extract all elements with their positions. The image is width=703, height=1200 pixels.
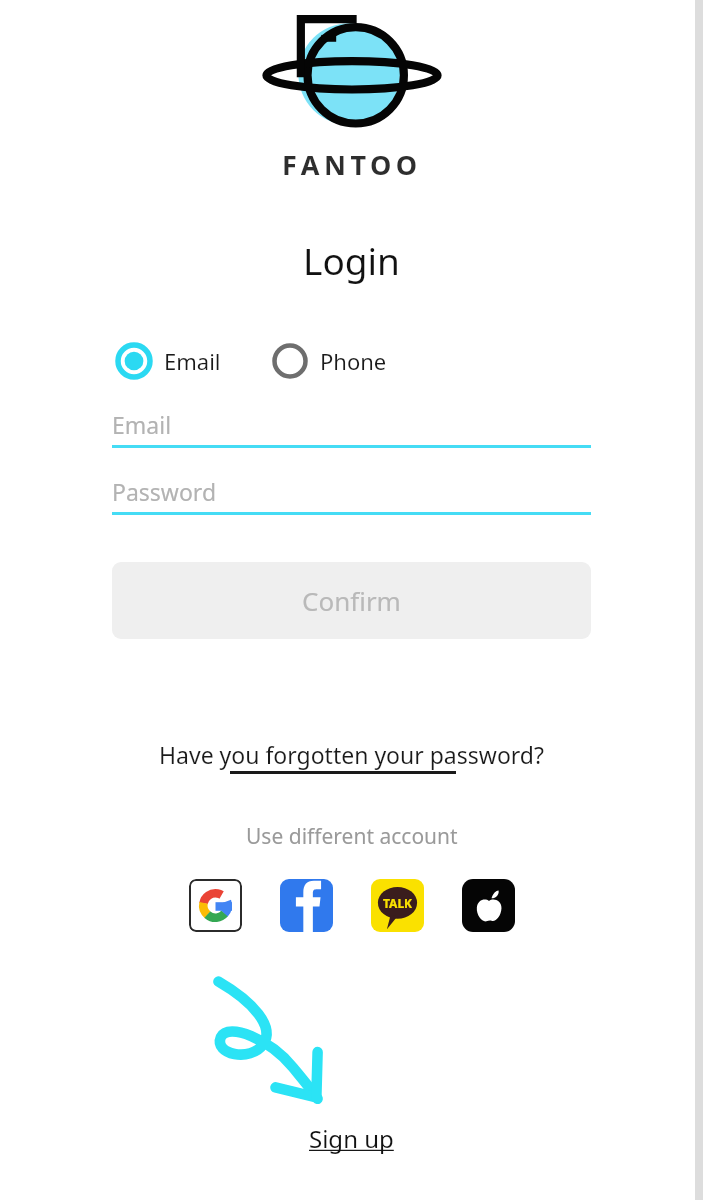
button[interactable]: Phone bbox=[272, 343, 387, 379]
button[interactable]: Sign in with Kakao Talk bbox=[371, 879, 424, 932]
button[interactable]: Confirm bbox=[112, 562, 591, 639]
staticText: Use different account bbox=[246, 822, 458, 851]
staticText: Password bbox=[112, 476, 217, 507]
staticText: Login bbox=[303, 235, 400, 285]
staticText: Sign up bbox=[309, 1122, 394, 1155]
staticText: TALK bbox=[383, 895, 413, 911]
button[interactable]: Sign in with Google bbox=[189, 879, 242, 932]
staticText: Email bbox=[112, 409, 172, 440]
staticText: Phone bbox=[320, 346, 387, 376]
button[interactable]: Password bbox=[112, 470, 591, 515]
button[interactable]: Email bbox=[116, 343, 221, 379]
staticText: FANTOO bbox=[282, 146, 422, 183]
button[interactable]: Email bbox=[112, 403, 591, 448]
button[interactable]: Sign up bbox=[309, 1122, 394, 1155]
button[interactable]: Sign in with Apple bbox=[462, 879, 515, 932]
staticText: Have you forgotten your password? bbox=[159, 739, 544, 770]
button[interactable]: Have you forgotten your password? bbox=[159, 739, 544, 770]
button[interactable]: Sign in with Facebook bbox=[280, 879, 333, 932]
staticText: Confirm bbox=[302, 583, 401, 618]
staticText: Email bbox=[164, 346, 221, 376]
